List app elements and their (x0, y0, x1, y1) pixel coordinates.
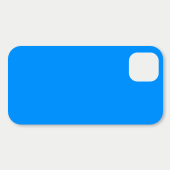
button[interactable]: Blue iPhone case (7, 46, 162, 124)
